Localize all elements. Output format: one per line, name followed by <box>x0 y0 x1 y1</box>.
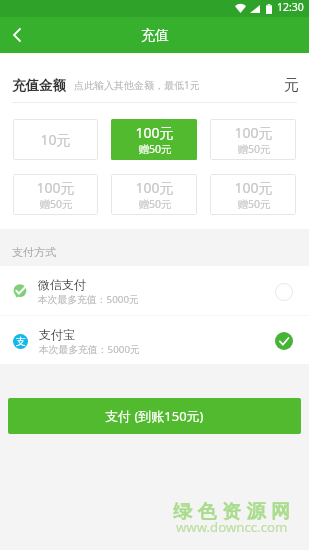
button[interactable]: 10元 <box>13 119 98 160</box>
staticText: 赠50元 <box>237 197 271 211</box>
staticText: 12:30 <box>277 0 304 14</box>
staticText: 支付 (到账150元) <box>105 407 204 425</box>
staticText: 微信支付 <box>38 277 86 292</box>
staticText: 100元 <box>234 123 273 142</box>
button[interactable]: 充值金额 <box>12 68 299 102</box>
button[interactable]: Back <box>0 17 34 53</box>
staticText: 绿色资源网 <box>173 500 296 524</box>
button[interactable]: 100元 <box>210 174 296 215</box>
staticText: 本次最多充值：5000元 <box>39 343 140 356</box>
staticText: 点此输入其他金额，最低1元 <box>74 78 200 92</box>
staticText: 充值 <box>141 27 169 45</box>
button[interactable]: 支付 (到账150元) <box>8 398 301 434</box>
staticText: 赠50元 <box>237 142 271 156</box>
staticText: 支付方式 <box>12 245 56 259</box>
button[interactable]: 100元 <box>111 119 197 160</box>
staticText: 10元 <box>40 130 71 149</box>
staticText: 赠50元 <box>138 142 172 156</box>
button[interactable]: 支 <box>0 316 309 364</box>
button[interactable]: 微信支付 <box>0 266 309 315</box>
staticText: 本次最多充值：5000元 <box>38 293 139 306</box>
button[interactable]: 100元 <box>210 119 296 160</box>
button[interactable]: 100元 <box>111 174 197 215</box>
staticText: 支付宝 <box>39 327 75 342</box>
staticText: 元 <box>284 76 299 95</box>
button[interactable]: 100元 <box>13 174 98 215</box>
staticText: 赠50元 <box>39 197 73 211</box>
staticText: 支 <box>16 335 26 348</box>
staticText: 赠50元 <box>138 197 172 211</box>
staticText: 100元 <box>135 123 174 142</box>
staticText: 100元 <box>234 178 273 197</box>
staticText: 充值金额 <box>12 77 66 94</box>
staticText: www.downcc.com <box>176 518 288 536</box>
staticText: 100元 <box>36 178 75 197</box>
staticText: 100元 <box>135 178 174 197</box>
